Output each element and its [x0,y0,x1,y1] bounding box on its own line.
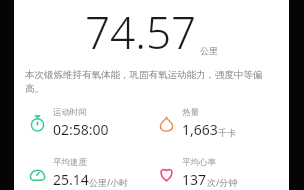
staticText: 25.14 [53,170,89,189]
other: 平均速度 [28,164,47,183]
staticText: 公里 [200,45,218,56]
button[interactable]: 平均速度 [28,157,129,189]
staticText: 千卡 [218,127,236,138]
other: 平均心率 [157,164,176,183]
staticText: 02:58:00 [53,120,109,139]
other: 热量 [157,114,176,133]
staticText: 本次锻炼维持有氧体能，巩固有氧运动能力，强度中等偏高。 [25,69,275,95]
staticText: 平均速度 [53,157,87,168]
other: 运动时间 [28,114,47,133]
staticText: 平均心率 [182,157,216,168]
button[interactable]: 运动时间 [28,107,109,139]
staticText: 1,663 [182,120,218,139]
staticText: 热量 [182,107,199,118]
button[interactable]: 平均心率 [157,157,238,189]
staticText: 公里/小时 [89,176,129,188]
staticText: 运动时间 [53,107,87,118]
button[interactable]: 热量 [157,107,236,139]
staticText: 74.57 [85,2,197,62]
staticText: 次/分钟 [207,176,238,188]
staticText: 137 [182,170,207,189]
